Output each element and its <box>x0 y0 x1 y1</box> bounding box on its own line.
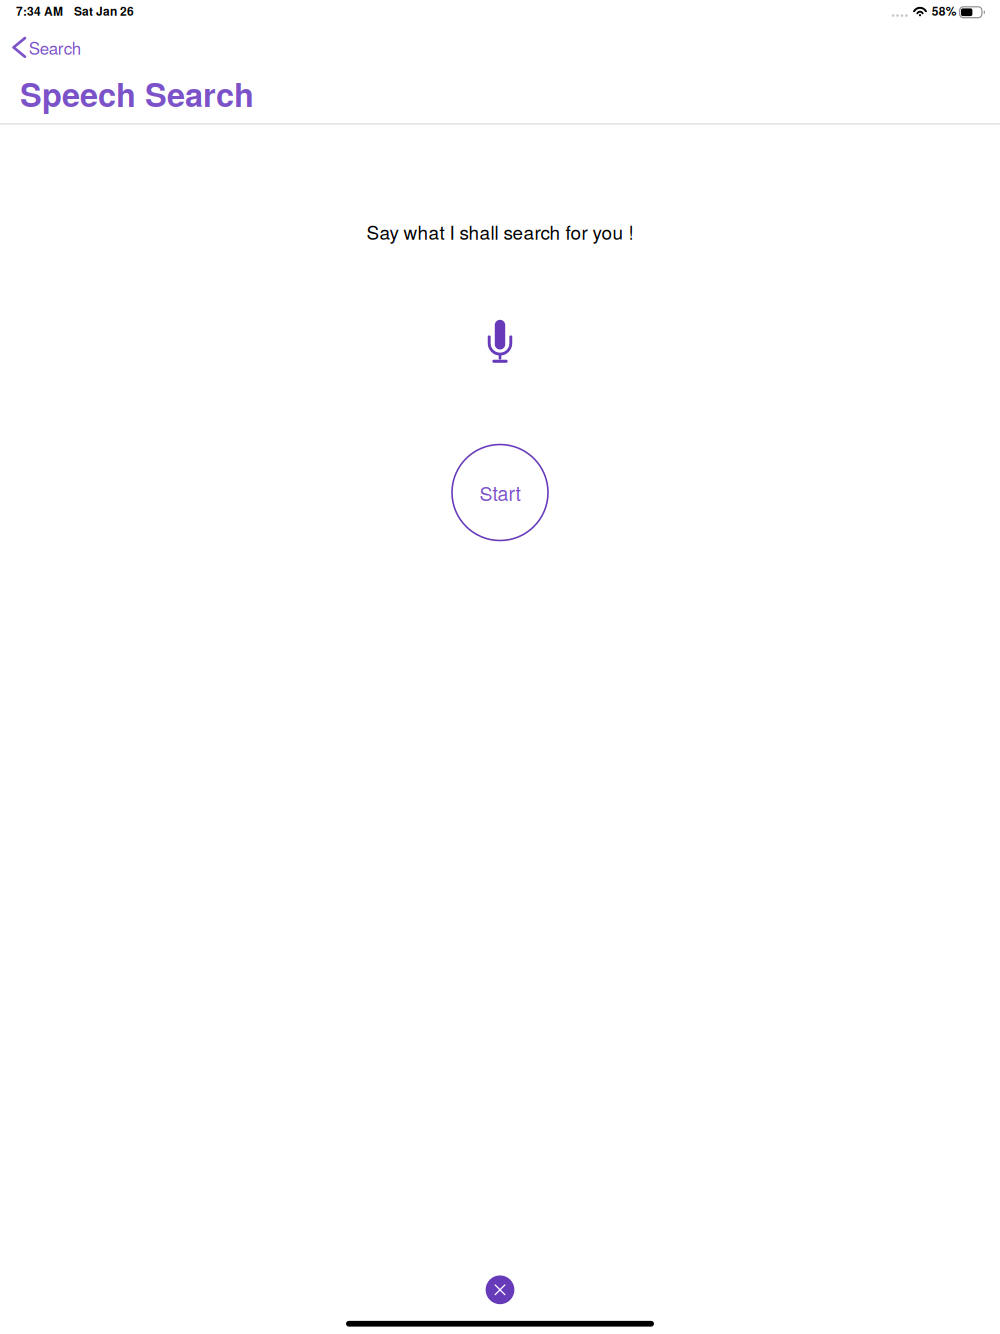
staticText: 58% <box>932 2 957 19</box>
staticText: Say what I shall search for you ! <box>366 218 633 245</box>
staticText: Speech Search <box>20 70 254 117</box>
staticText: Sat Jan 26 <box>74 2 134 19</box>
button[interactable]: Close <box>480 1270 520 1310</box>
button[interactable]: Search <box>0 35 1000 59</box>
staticText: 7:34 AM <box>16 2 63 19</box>
staticText: Search <box>29 35 81 59</box>
staticText: Start <box>479 479 520 506</box>
button[interactable]: Start <box>452 444 548 540</box>
